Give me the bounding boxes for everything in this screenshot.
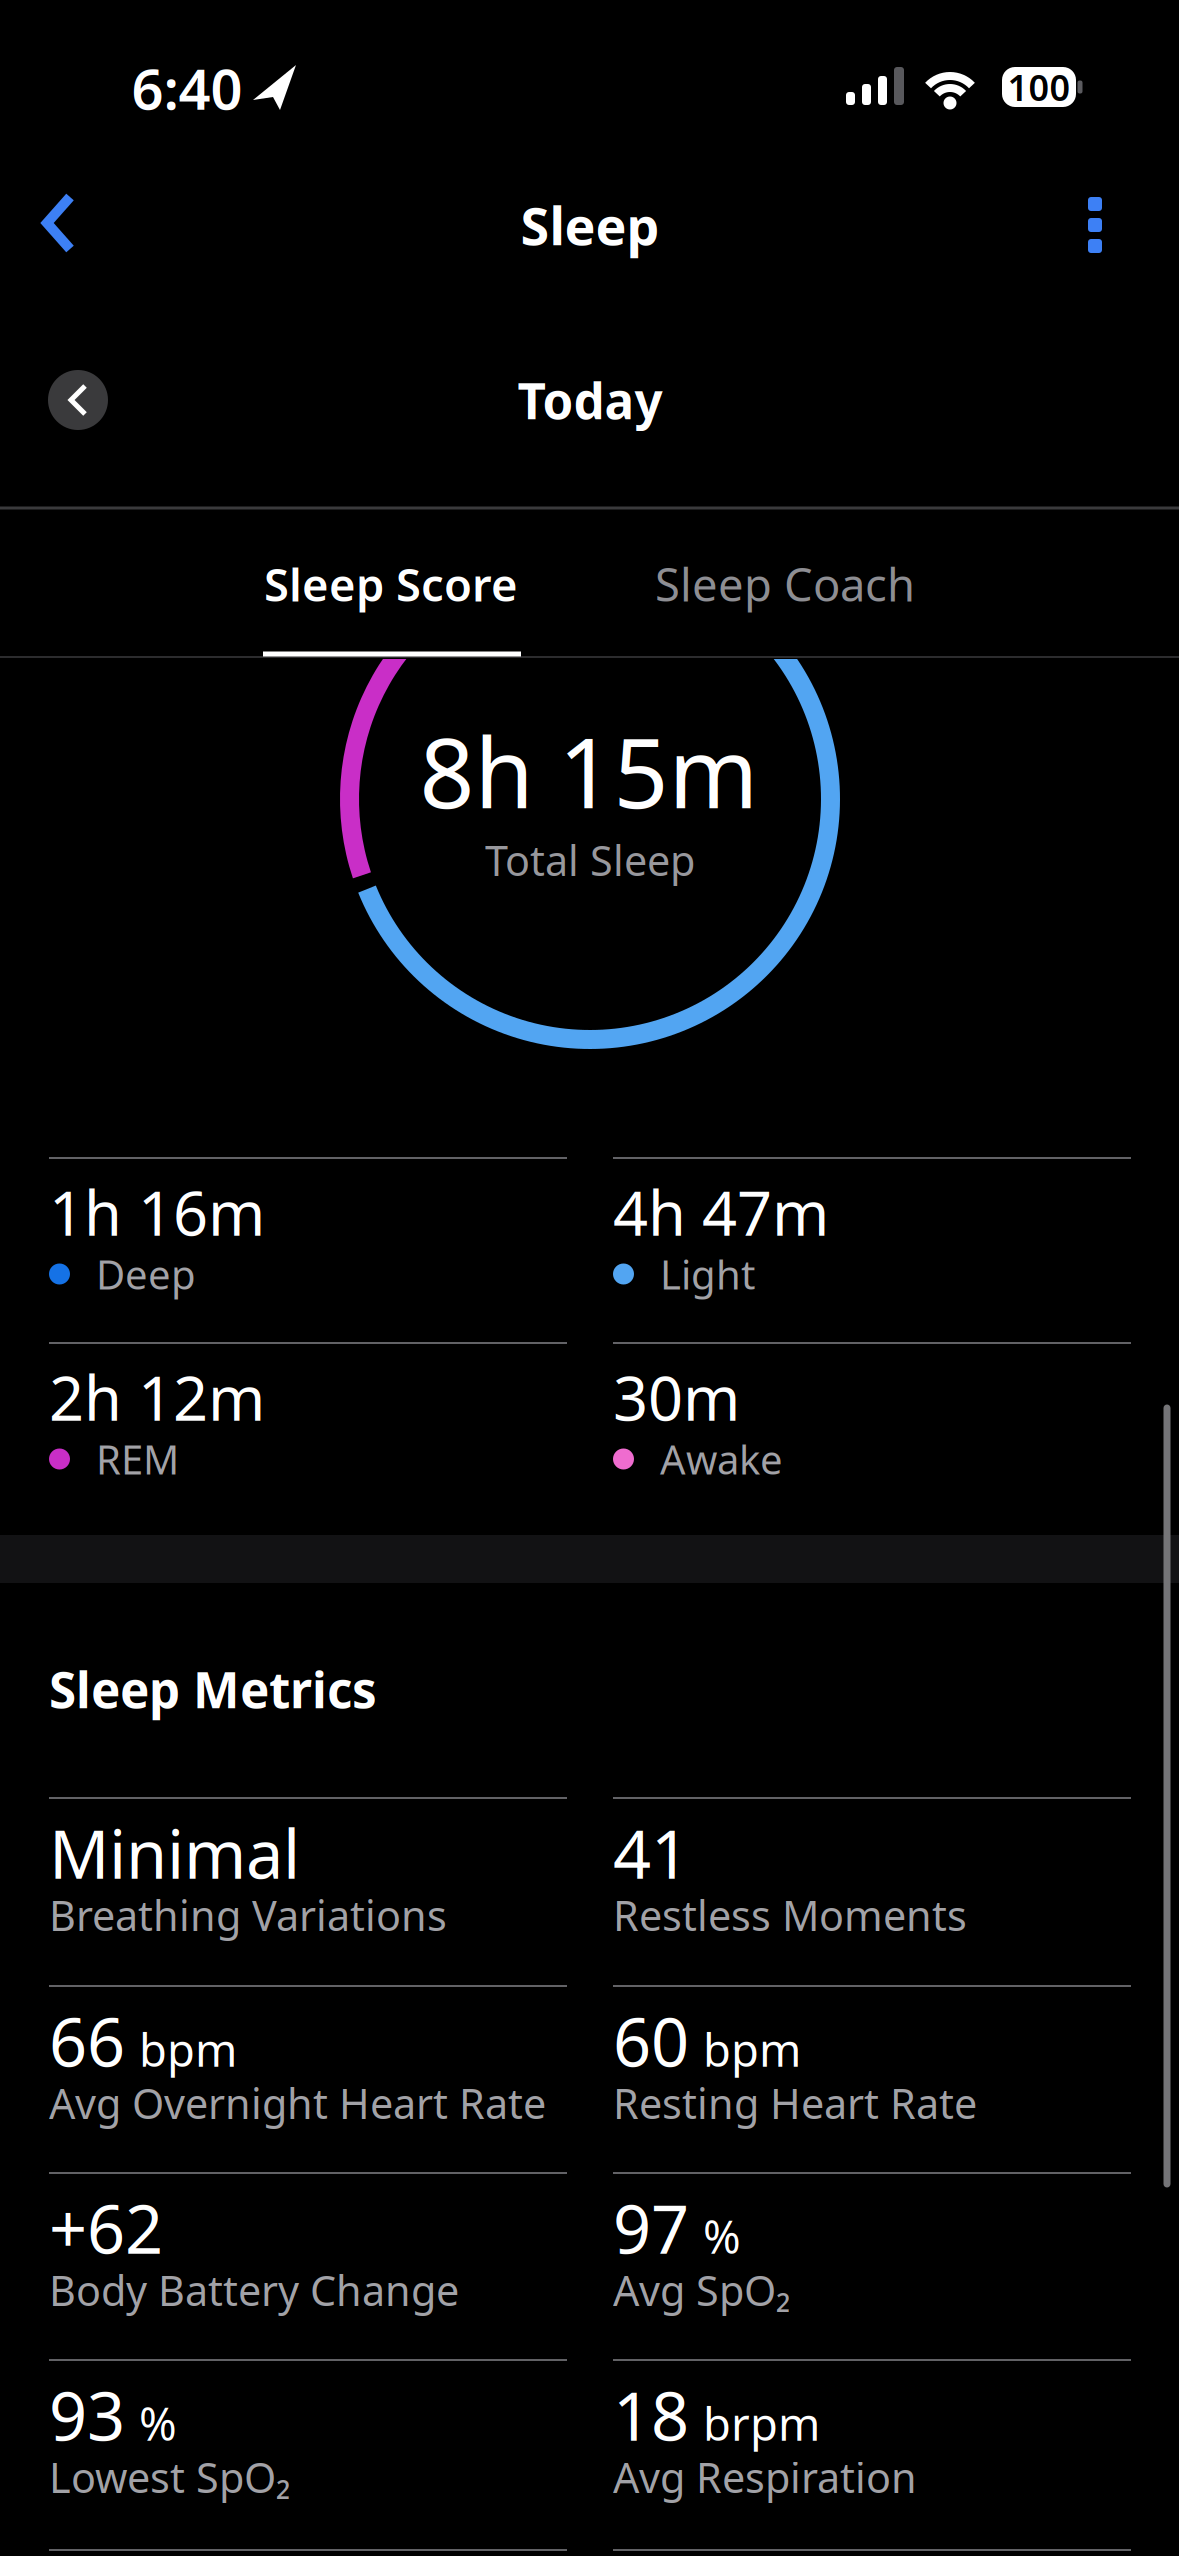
staticText: Light (660, 1247, 755, 1300)
staticText: Total Sleep (485, 833, 695, 887)
staticText: 6:40 (131, 51, 242, 125)
staticText: Lowest SpO₂ (49, 2450, 290, 2504)
staticText: 60 (613, 1997, 689, 2085)
staticText: 97 (613, 2184, 689, 2272)
staticText: Today (517, 367, 662, 433)
button[interactable]: Previous day (48, 370, 108, 430)
staticText: 8h 15m (419, 707, 758, 835)
staticText: Deep (96, 1247, 196, 1300)
staticText: Sleep Coach (655, 554, 915, 614)
staticText: Minimal (49, 1809, 300, 1897)
staticText: Sleep Metrics (49, 1656, 377, 1722)
staticText: 18 (613, 2371, 689, 2459)
staticText: 4h 47m (613, 1171, 829, 1253)
staticText: 41 (613, 1809, 689, 1897)
staticText: Resting Heart Rate (613, 2076, 977, 2130)
button[interactable]: Sleep Score (221, 524, 561, 644)
staticText: Sleep Score (264, 554, 518, 614)
staticText: % (703, 2206, 741, 2266)
staticText: 1h 16m (49, 1171, 265, 1253)
staticText: bpm (139, 2019, 237, 2079)
staticText: bpm (703, 2019, 801, 2079)
staticText: Restless Moments (613, 1888, 967, 1942)
staticText: 66 (49, 1997, 125, 2085)
staticText: Avg SpO₂ (613, 2263, 790, 2317)
staticText: Awake (660, 1432, 783, 1485)
staticText: 2h 12m (49, 1356, 265, 1438)
staticText: REM (96, 1432, 179, 1485)
staticText: % (139, 2393, 177, 2453)
staticText: Body Battery Change (49, 2263, 459, 2317)
staticText: Breathing Variations (49, 1888, 447, 1942)
staticText: Sleep (520, 190, 659, 260)
button[interactable]: More (1088, 197, 1102, 253)
button[interactable]: Sleep Coach (615, 524, 955, 644)
staticText: 100 (1007, 63, 1070, 111)
staticText: +62 (49, 2184, 163, 2272)
staticText: brpm (703, 2393, 820, 2453)
staticText: 93 (49, 2371, 125, 2459)
button[interactable]: Back (42, 195, 76, 251)
staticText: Avg Respiration (613, 2450, 917, 2504)
staticText: 30m (613, 1356, 740, 1438)
staticText: Avg Overnight Heart Rate (49, 2076, 546, 2130)
